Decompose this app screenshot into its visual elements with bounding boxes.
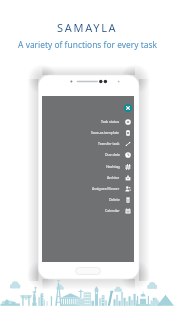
button[interactable]: Delete [42,194,134,205]
staticText: A variety of functions for every task [18,39,157,50]
button[interactable]: Assignee/Viewer [42,183,134,194]
button[interactable]: Calendar [42,205,134,216]
staticText: Assignee/Viewer [92,186,120,191]
staticText: Archive [107,175,120,180]
button[interactable]: Close [124,104,132,112]
staticText: Hashtag [106,164,120,169]
staticText: Calendar [105,208,120,213]
button[interactable]: Due date [42,149,134,160]
staticText: Save-as template [91,130,120,135]
button[interactable]: Archive [42,172,134,183]
staticText: SAMAYLA [57,20,118,35]
button[interactable]: Hashtag [42,161,134,172]
staticText: Due date [105,152,120,157]
staticText: Transfer task [98,141,120,146]
button[interactable]: Task status [42,116,134,127]
staticText: Task status [101,119,120,124]
button[interactable]: Save-as template [42,127,134,138]
staticText: Delete [109,197,120,202]
button[interactable]: Transfer task [42,138,134,149]
